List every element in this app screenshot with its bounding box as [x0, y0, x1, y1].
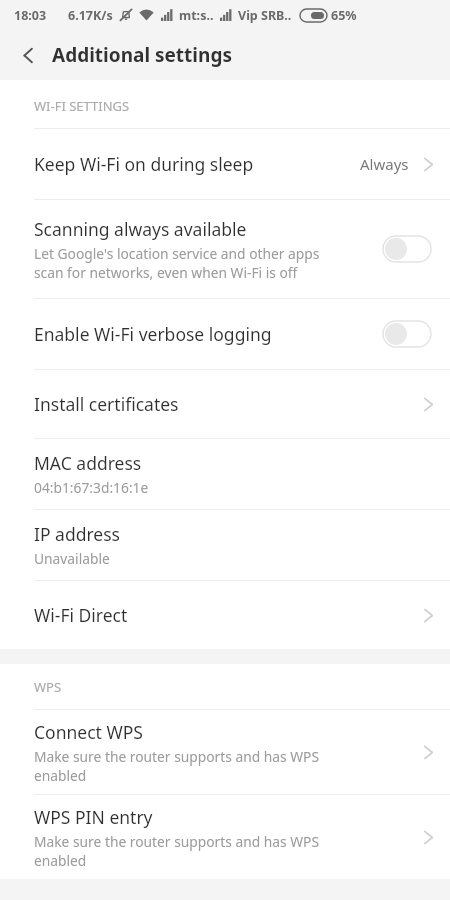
staticText: Wi-Fi Direct: [34, 603, 128, 627]
staticText: 04:b1:67:3d:16:1e: [34, 478, 149, 497]
staticText: Additional settings: [52, 42, 232, 68]
staticText: Scanning always available: [34, 217, 247, 241]
staticText: 65%: [331, 7, 357, 24]
button[interactable]: Install certificates: [0, 370, 450, 438]
staticText: MAC address: [34, 451, 142, 475]
staticText: Keep Wi-Fi on during sleep: [34, 152, 254, 176]
staticText: Let Google's location service and other …: [34, 244, 320, 282]
button[interactable]: MAC address: [0, 439, 450, 509]
button[interactable]: Scanning always available: [0, 200, 450, 298]
staticText: Always: [360, 154, 409, 174]
button[interactable]: Toggle: [380, 317, 434, 351]
button[interactable]: Enable Wi-Fi verbose logging: [0, 299, 450, 369]
button[interactable]: Wi-Fi Direct: [0, 581, 450, 649]
staticText: Connect WPS: [34, 720, 143, 744]
staticText: Vip SRB..: [238, 7, 292, 24]
button[interactable]: Toggle: [380, 232, 434, 266]
button[interactable]: WPS PIN entry: [0, 795, 450, 879]
staticText: WPS PIN entry: [34, 805, 153, 829]
staticText: Make sure the router supports and has WP…: [34, 747, 320, 785]
staticText: IP address: [34, 522, 120, 546]
staticText: WPS: [34, 678, 62, 696]
staticText: 18:03: [14, 7, 47, 24]
button[interactable]: Back: [8, 35, 48, 75]
staticText: 6.17K/s: [68, 7, 113, 24]
staticText: Install certificates: [34, 392, 179, 416]
staticText: Enable Wi-Fi verbose logging: [34, 322, 272, 346]
staticText: Make sure the router supports and has WP…: [34, 832, 320, 870]
staticText: WI-FI SETTINGS: [34, 97, 130, 115]
staticText: mt:s..: [179, 7, 214, 24]
staticText: Unavailable: [34, 549, 110, 568]
button[interactable]: IP address: [0, 510, 450, 580]
button[interactable]: Keep Wi-Fi on during sleep: [0, 129, 450, 199]
button[interactable]: Connect WPS: [0, 710, 450, 794]
